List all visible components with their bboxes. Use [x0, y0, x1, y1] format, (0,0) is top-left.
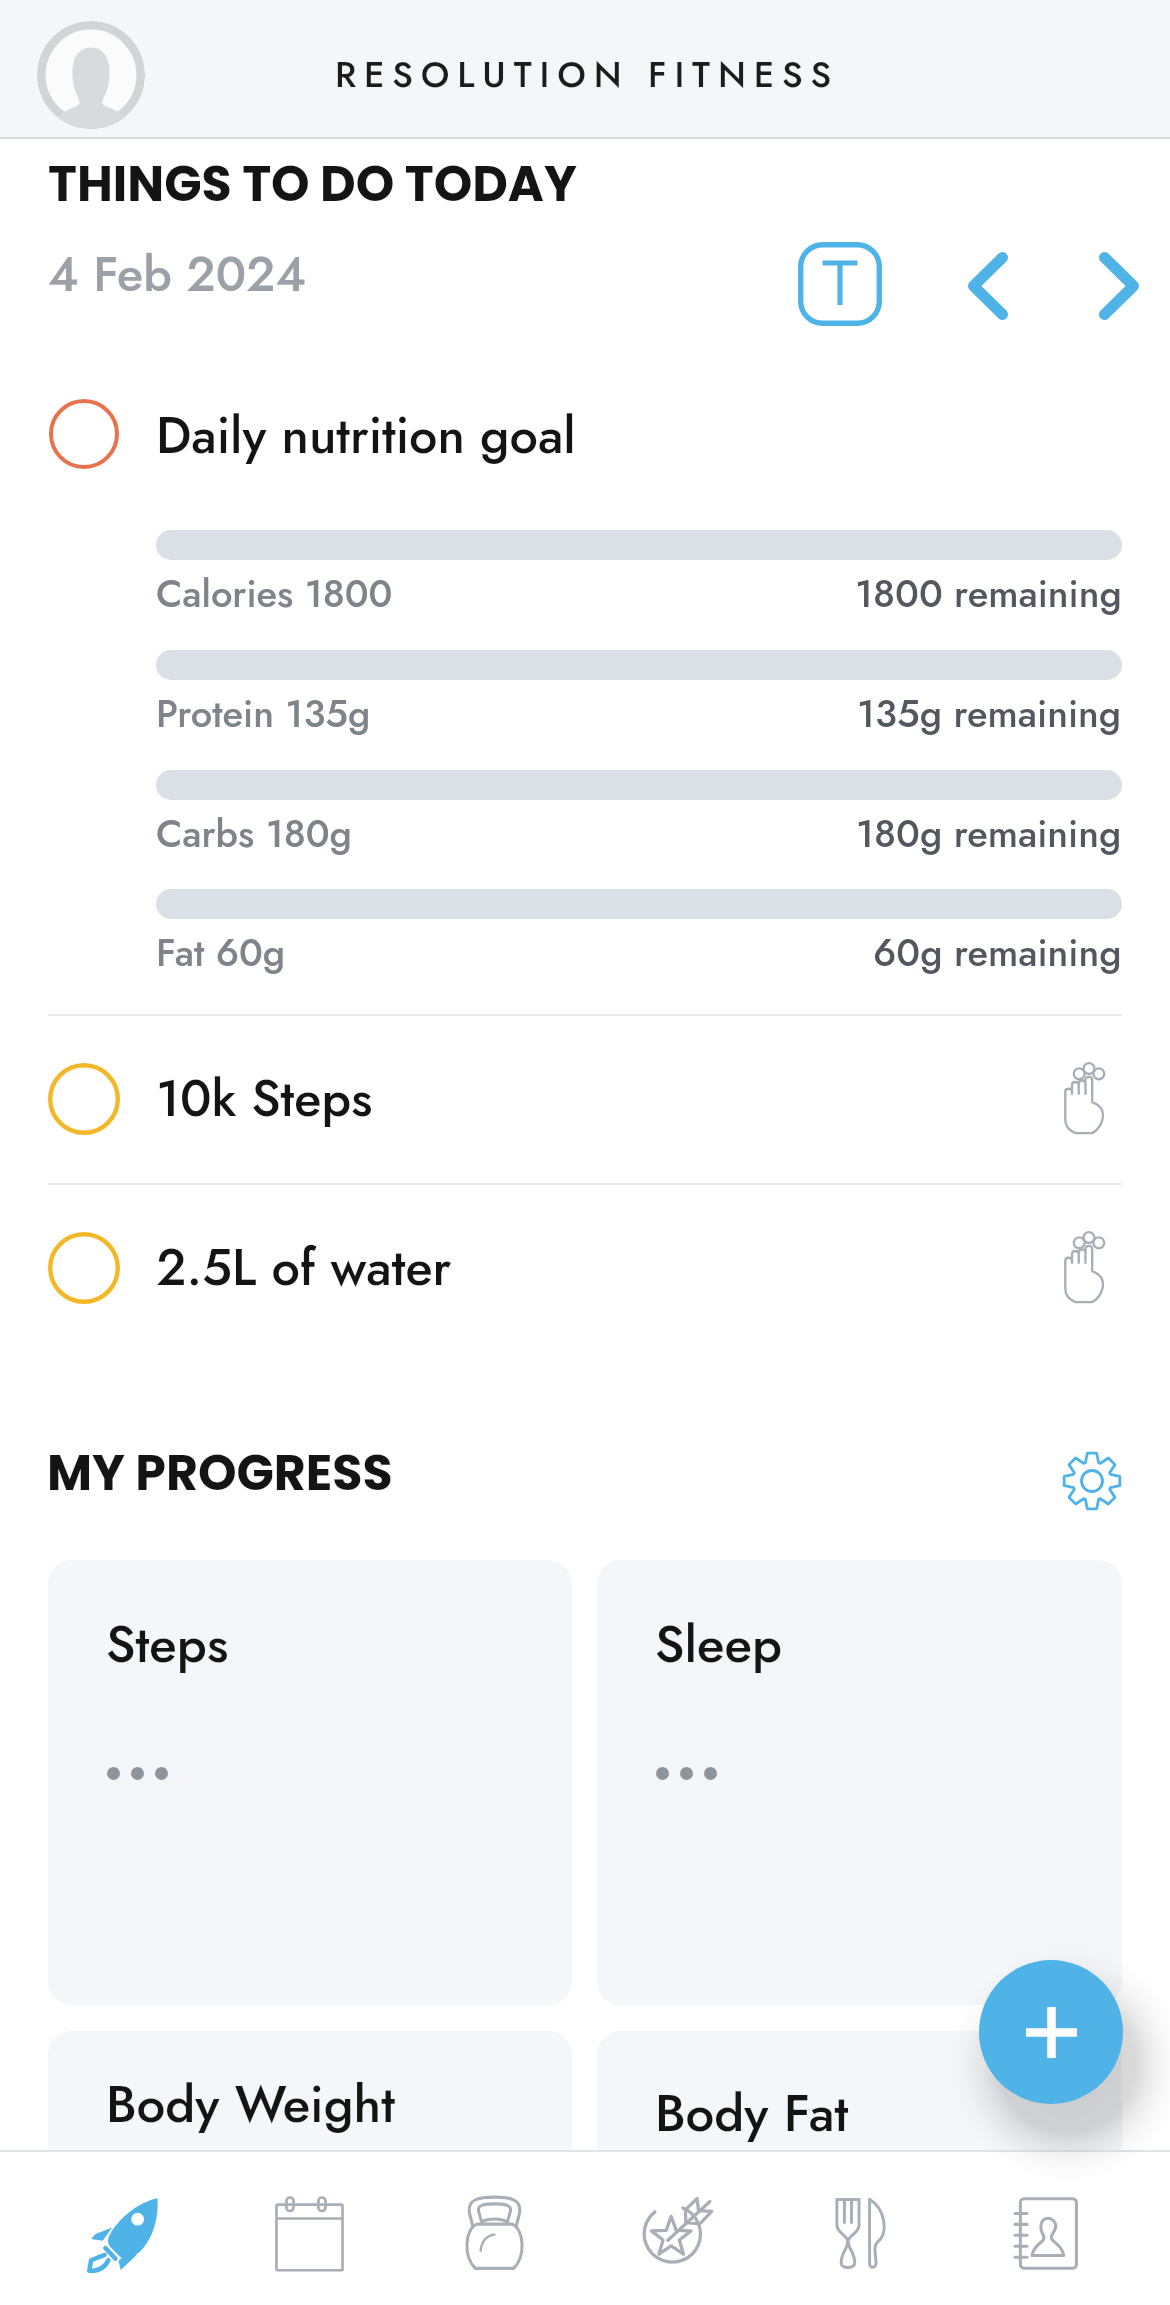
- button[interactable]: 10k Steps: [0, 1014, 1170, 1183]
- staticText: THINGS TO DO TODAY: [48, 149, 577, 218]
- staticText: 135g remaining: [857, 686, 1122, 741]
- button[interactable]: Add: [979, 1960, 1123, 2104]
- staticText: RESOLUTION FITNESS: [335, 49, 839, 101]
- button[interactable]: Previous day: [938, 236, 1038, 336]
- staticText: Carbs 180g: [156, 806, 352, 861]
- staticText: Fat 60g: [156, 925, 286, 980]
- button[interactable]: Workouts: [402, 2150, 586, 2305]
- button[interactable]: Next day: [1069, 236, 1169, 336]
- staticText: 2.5L of water: [156, 1231, 452, 1304]
- staticText: 1800 remaining: [855, 566, 1122, 621]
- staticText: 180g remaining: [856, 806, 1122, 861]
- button[interactable]: Calendar: [217, 2150, 402, 2305]
- button[interactable]: Nutrition: [770, 2150, 954, 2305]
- staticText: Sleep: [655, 1607, 782, 1681]
- staticText: Steps: [106, 1607, 229, 1681]
- staticText: Calories 1800: [156, 566, 393, 621]
- button[interactable]: Body Fat: [597, 2031, 1122, 2305]
- button[interactable]: Profile: [37, 21, 145, 129]
- staticText: 60g remaining: [873, 925, 1122, 980]
- staticText: Protein 135g: [156, 686, 371, 741]
- button[interactable]: Sleep: [597, 1560, 1122, 2005]
- button[interactable]: Settings: [1052, 1441, 1132, 1521]
- button[interactable]: 2.5L of water: [0, 1183, 1170, 1352]
- button[interactable]: Dashboard: [32, 2150, 217, 2305]
- button[interactable]: Goals: [586, 2150, 770, 2305]
- staticText: MY PROGRESS: [47, 1438, 393, 1507]
- staticText: Daily nutrition goal: [156, 399, 576, 469]
- button[interactable]: Today: [790, 234, 890, 334]
- staticText: Body Weight: [106, 2067, 396, 2141]
- button[interactable]: Steps: [48, 1560, 572, 2005]
- staticText: 10k Steps: [156, 1062, 373, 1135]
- staticText: Body Fat: [655, 2076, 849, 2150]
- button[interactable]: Contacts: [954, 2150, 1138, 2305]
- button[interactable]: Daily nutrition goal: [0, 399, 1170, 469]
- button[interactable]: Body Weight: [48, 2031, 572, 2305]
- staticText: 4 Feb 2024: [48, 239, 306, 309]
